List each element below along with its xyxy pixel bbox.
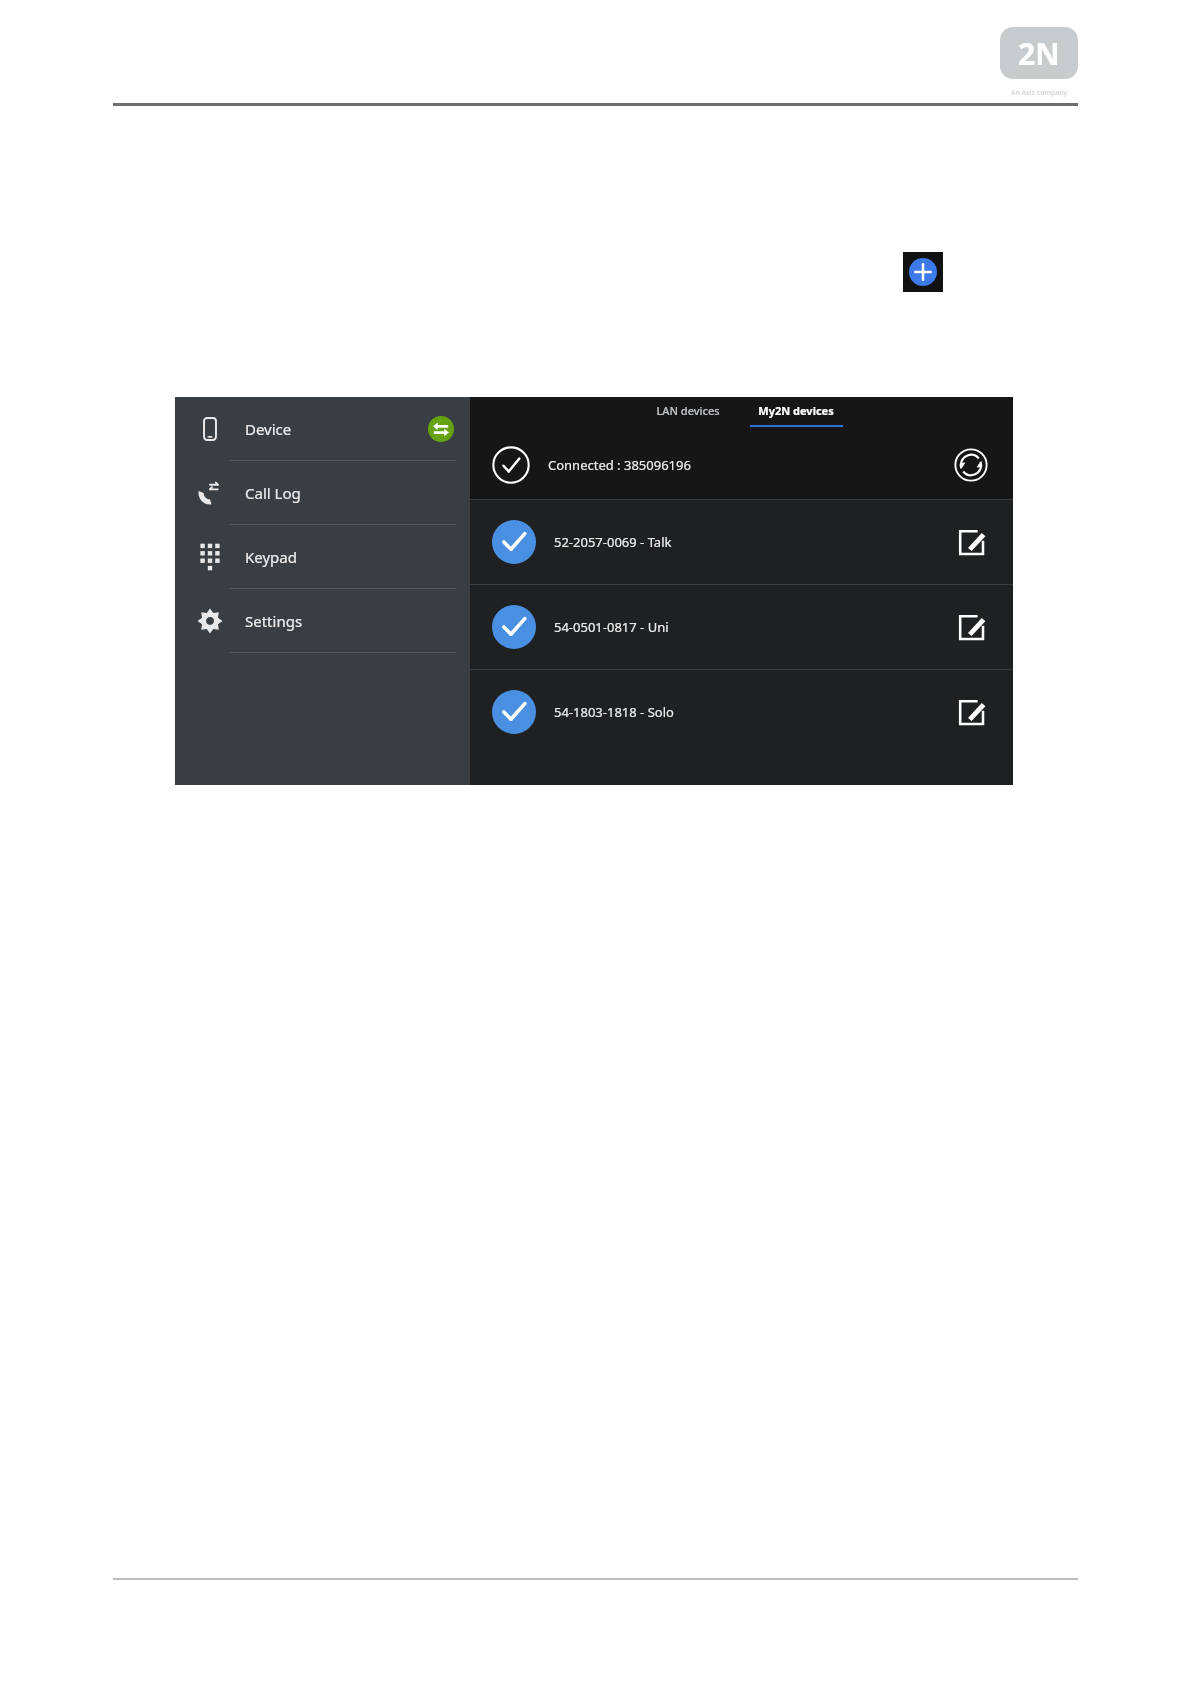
button[interactable]: 2N, An Axis company logo [1000, 27, 1078, 99]
button[interactable]: 54-0501-0817 - Uni [470, 585, 1013, 669]
staticText: 54-1803-1818 - Solo [554, 703, 674, 721]
staticText: An Axis company [1011, 88, 1068, 98]
button[interactable]: Edit device 52-2057-0069 - Talk [951, 522, 991, 562]
staticText: LAN devices [656, 403, 720, 418]
button[interactable]: Edit device 54-1803-1818 - Solo [951, 692, 991, 732]
staticText: Keypad [245, 547, 297, 567]
button[interactable]: My2N devices [748, 397, 844, 427]
button[interactable]: Settings [175, 589, 470, 653]
button[interactable]: Device [175, 397, 470, 461]
staticText: 52-2057-0069 - Talk [554, 533, 672, 551]
button[interactable]: Sync status [428, 416, 454, 442]
button[interactable]: Keypad [175, 525, 470, 589]
button[interactable]: Connected : 385096196 [470, 431, 1013, 499]
button[interactable]: Call Log [175, 461, 470, 525]
button[interactable]: 52-2057-0069 - Talk [470, 500, 1013, 584]
staticText: Connected : 385096196 [548, 456, 691, 474]
staticText: Call Log [245, 483, 301, 503]
button[interactable]: 54-1803-1818 - Solo [470, 670, 1013, 754]
staticText: My2N devices [758, 403, 834, 418]
button[interactable]: Refresh [951, 445, 991, 485]
button[interactable]: Add device [903, 252, 943, 292]
button[interactable]: LAN devices [640, 397, 736, 427]
staticText: Settings [245, 611, 303, 631]
staticText: 54-0501-0817 - Uni [554, 618, 669, 636]
staticText: 2N [1018, 33, 1060, 74]
button[interactable]: Edit device 54-0501-0817 - Uni [951, 607, 991, 647]
staticText: Device [245, 419, 292, 439]
